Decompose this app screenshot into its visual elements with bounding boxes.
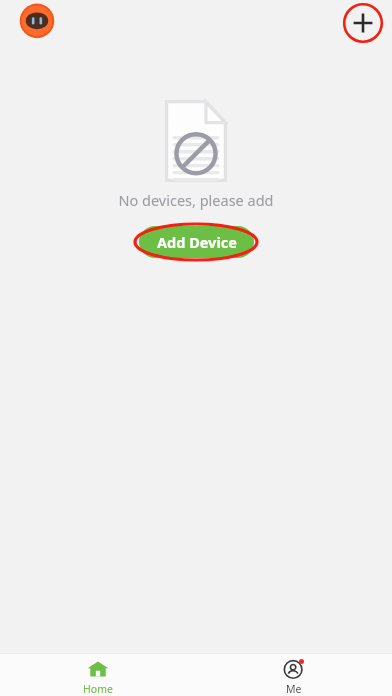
button[interactable]: Profile (18, 3, 56, 41)
staticText: No devices, please add (118, 190, 274, 210)
staticText: Add Device (157, 232, 237, 252)
button[interactable]: Me (196, 654, 392, 696)
staticText: Me (286, 682, 302, 696)
button[interactable]: Add Device (139, 226, 254, 258)
button[interactable]: Home (0, 654, 196, 696)
button[interactable]: Add (342, 2, 384, 44)
staticText: Home (83, 682, 113, 696)
